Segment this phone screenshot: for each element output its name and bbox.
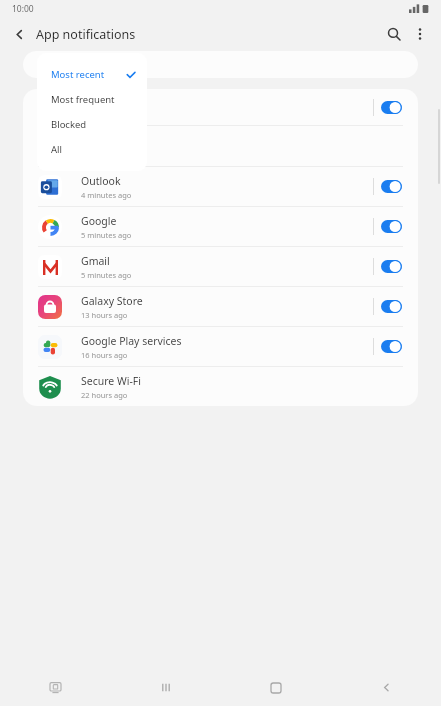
button[interactable]: Toggle notifications (381, 300, 402, 313)
button[interactable]: Toggle notifications (381, 260, 402, 273)
staticText: Outlook (81, 174, 121, 188)
button[interactable]: Google (23, 207, 418, 246)
staticText: 16 hours ago (81, 350, 128, 360)
button[interactable]: Recent apps (111, 669, 221, 706)
staticText: 13 hours ago (81, 310, 128, 320)
staticText: Most recent (51, 68, 105, 81)
staticText: 22 hours ago (81, 390, 128, 400)
button[interactable]: Secure Wi-Fi (23, 367, 418, 406)
staticText: 4 minutes ago (81, 190, 132, 200)
button[interactable]: Back (8, 23, 30, 45)
staticText: 5 minutes ago (81, 270, 132, 280)
button[interactable]: Search (381, 21, 407, 47)
button[interactable]: Back (331, 669, 441, 706)
staticText: Secure Wi-Fi (81, 374, 142, 388)
staticText: App notifications (36, 26, 136, 43)
button[interactable]: Toggle notifications (381, 180, 402, 193)
button[interactable]: Outlook (23, 167, 418, 206)
button[interactable]: Blocked (37, 112, 147, 137)
staticText: Google (81, 214, 117, 228)
staticText: Most frequent (51, 93, 115, 106)
staticText: 5 minutes ago (81, 230, 132, 240)
staticText: 10:00 (12, 3, 34, 15)
staticText: Gmail (81, 254, 110, 268)
button[interactable]: Google Play services (23, 327, 418, 366)
button[interactable]: All (37, 137, 147, 162)
button[interactable]: Toggle notifications (381, 340, 402, 353)
button[interactable]: Toggle notifications (381, 101, 402, 114)
button[interactable]: Home (221, 669, 331, 706)
button[interactable] (23, 51, 418, 78)
staticText: All (51, 143, 62, 156)
button[interactable]: Most frequent (37, 87, 147, 112)
button[interactable]: Toggle notifications (381, 220, 402, 233)
staticText: Google Play services (81, 334, 182, 348)
button[interactable]: Show keyboard (0, 669, 111, 706)
button[interactable]: Most recent (37, 62, 147, 87)
button[interactable] (23, 126, 418, 166)
button[interactable]: Gmail (23, 247, 418, 286)
staticText: Blocked (51, 118, 87, 131)
button[interactable]: Galaxy Store (23, 287, 418, 326)
button[interactable]: Toggle notifications (23, 89, 418, 125)
staticText: Galaxy Store (81, 294, 143, 308)
button[interactable]: More options (407, 21, 433, 47)
